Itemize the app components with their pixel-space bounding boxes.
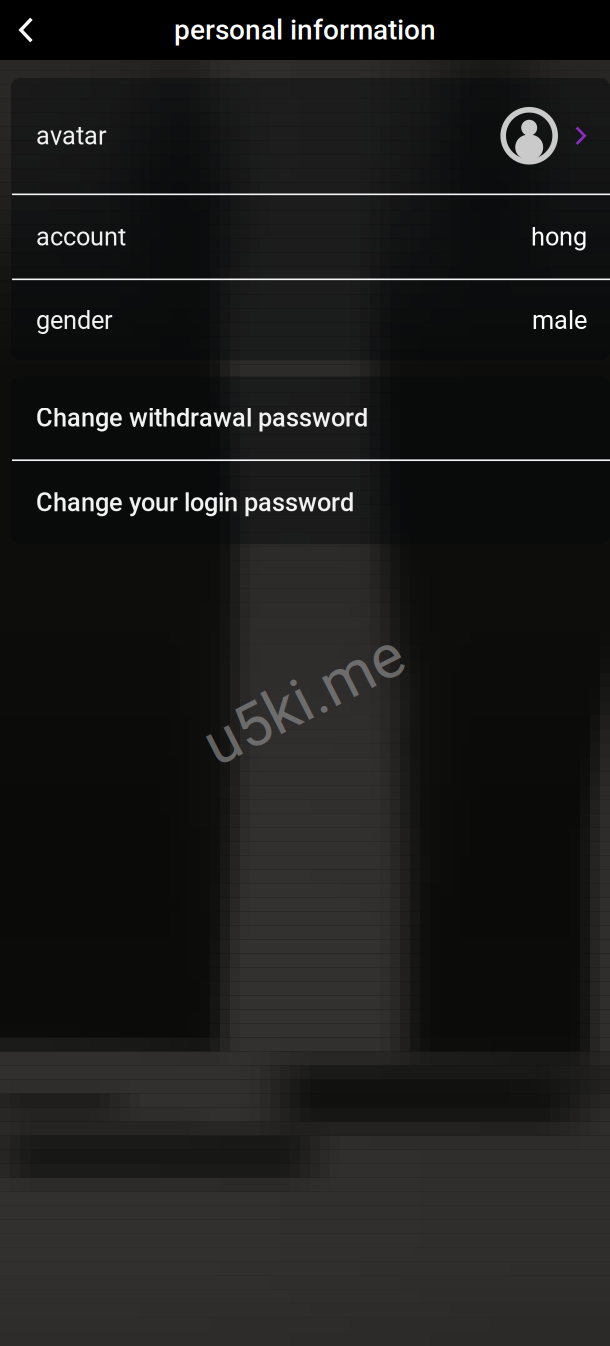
staticText: gender (36, 305, 113, 335)
button[interactable]: gender (11, 280, 610, 360)
staticText: Change withdrawal password (36, 403, 368, 433)
staticText: male (532, 305, 587, 335)
button[interactable]: Change withdrawal password (11, 376, 610, 459)
staticText: hong (531, 222, 587, 252)
staticText: personal information (174, 14, 436, 46)
staticText: Change your login password (36, 488, 354, 517)
button[interactable]: Back (0, 0, 47, 60)
button[interactable]: account (11, 195, 610, 278)
staticText: u5ki.me (195, 663, 412, 735)
staticText: avatar (36, 121, 107, 151)
button[interactable]: avatar (11, 78, 610, 193)
button[interactable]: Change your login password (11, 461, 610, 544)
staticText: account (36, 222, 126, 252)
